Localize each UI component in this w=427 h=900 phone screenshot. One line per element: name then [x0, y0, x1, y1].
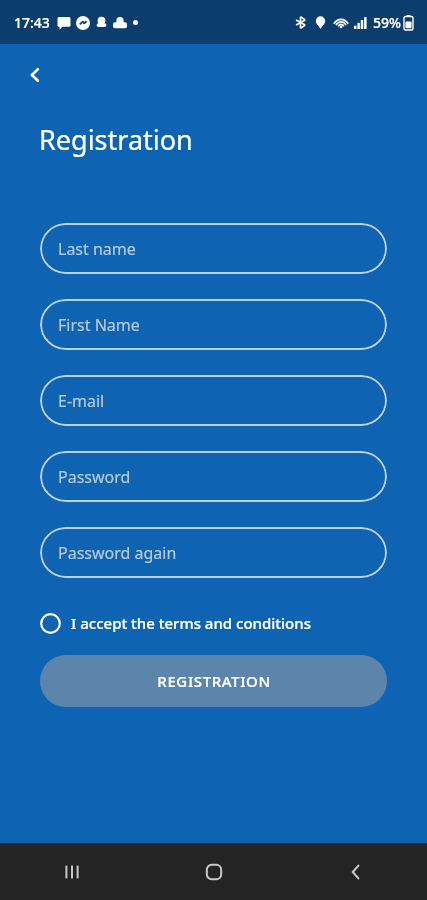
staticText: 59%: [373, 13, 401, 32]
staticText: REGISTRATION: [157, 671, 271, 691]
button[interactable]: Back: [18, 58, 52, 92]
staticText: First Name: [58, 314, 140, 336]
staticText: E-mail: [58, 390, 105, 412]
staticText: Password again: [58, 542, 177, 564]
staticText: Password: [58, 466, 131, 488]
button[interactable]: I accept the terms and conditions: [40, 606, 387, 640]
button[interactable]: Back: [285, 843, 427, 900]
button[interactable]: First Name: [40, 299, 387, 350]
button[interactable]: Last name: [40, 223, 387, 274]
staticText: 17:43: [14, 13, 50, 32]
staticText: I accept the terms and conditions: [71, 613, 311, 633]
staticText: Registration: [39, 121, 193, 158]
button[interactable]: Recent apps: [0, 843, 143, 900]
button[interactable]: REGISTRATION: [40, 655, 387, 707]
button[interactable]: E-mail: [40, 375, 387, 426]
button[interactable]: Password again: [40, 527, 387, 578]
staticText: Last name: [58, 238, 136, 260]
button[interactable]: Password: [40, 451, 387, 502]
button[interactable]: Home: [143, 843, 285, 900]
